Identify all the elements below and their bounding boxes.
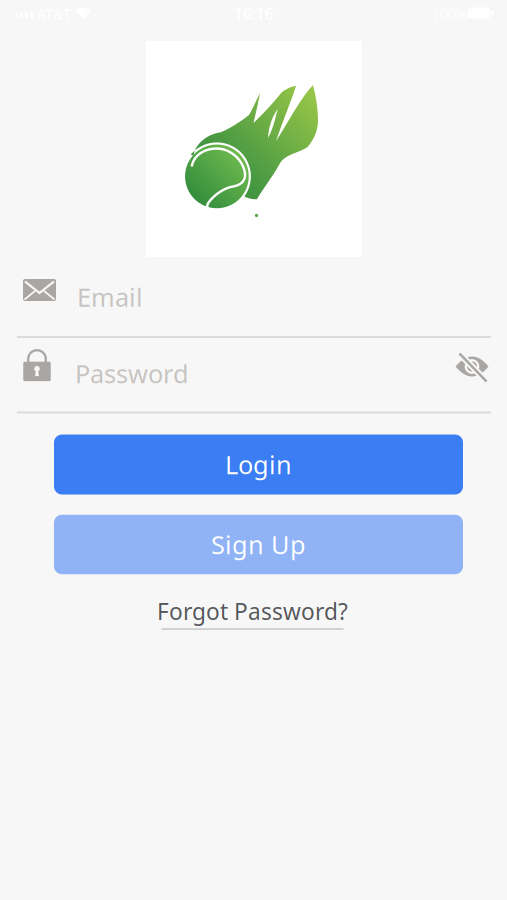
- button[interactable]: Forgot Password?: [157, 596, 348, 630]
- button[interactable]: Login: [54, 434, 463, 494]
- button[interactable]: Password: [0, 350, 507, 396]
- staticText: Forgot Password?: [157, 596, 348, 626]
- staticText: Login: [225, 448, 292, 481]
- staticText: Password: [75, 357, 189, 390]
- staticText: Email: [77, 280, 143, 314]
- button[interactable]: Sign Up: [54, 515, 463, 574]
- staticText: Sign Up: [211, 528, 306, 561]
- button[interactable]: Show password: [454, 351, 490, 385]
- button[interactable]: Email: [0, 275, 507, 319]
